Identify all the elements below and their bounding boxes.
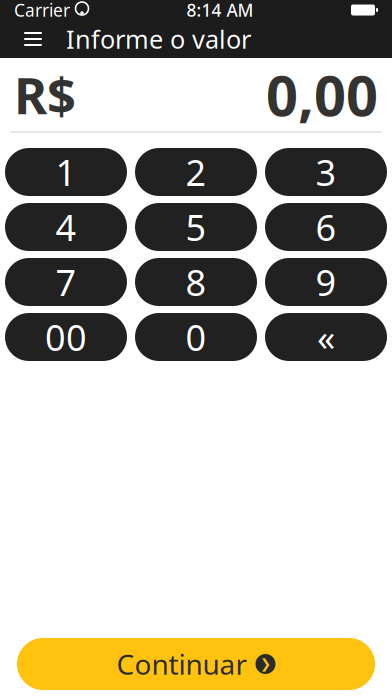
staticText: 00 bbox=[45, 313, 87, 361]
button[interactable]: 5 bbox=[135, 203, 257, 251]
button[interactable]: 6 bbox=[265, 203, 387, 251]
staticText: Carrier bbox=[14, 0, 70, 21]
staticText: 6 bbox=[315, 203, 336, 251]
staticText: 5 bbox=[185, 203, 206, 251]
staticText: 1 bbox=[55, 148, 76, 196]
staticText: 9 bbox=[315, 258, 336, 306]
button[interactable]: Backspace bbox=[265, 313, 387, 361]
staticText: 8:14 AM bbox=[186, 0, 253, 21]
staticText: « bbox=[317, 313, 335, 361]
button[interactable]: 1 bbox=[5, 148, 127, 196]
staticText: 2 bbox=[185, 148, 206, 196]
button[interactable]: 2 bbox=[135, 148, 257, 196]
staticText: 7 bbox=[55, 258, 76, 306]
staticText: 0 bbox=[185, 313, 206, 361]
button[interactable]: 0 bbox=[135, 313, 257, 361]
button[interactable]: 7 bbox=[5, 258, 127, 306]
staticText: Informe o valor bbox=[66, 22, 251, 56]
button[interactable]: 4 bbox=[5, 203, 127, 251]
staticText: 0,00 bbox=[266, 57, 378, 132]
staticText: 3 bbox=[315, 148, 336, 196]
staticText: 8 bbox=[185, 258, 206, 306]
button[interactable]: Menu bbox=[14, 20, 52, 58]
staticText: R$ bbox=[14, 61, 76, 128]
button[interactable]: 8 bbox=[135, 258, 257, 306]
button[interactable]: 9 bbox=[265, 258, 387, 306]
staticText: 4 bbox=[55, 203, 76, 251]
button[interactable]: 3 bbox=[265, 148, 387, 196]
button[interactable]: Continuar bbox=[17, 638, 375, 690]
button[interactable]: 00 bbox=[5, 313, 127, 361]
staticText: Continuar bbox=[116, 645, 247, 683]
staticText: ❯ bbox=[260, 656, 271, 671]
